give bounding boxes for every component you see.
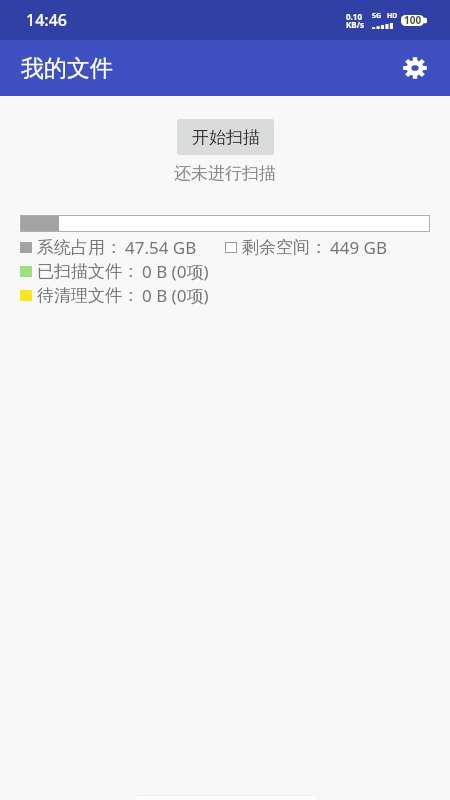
staticText: KB/s [346,19,364,30]
staticText: 待清理文件： [37,285,139,306]
staticText: 47.54 GB [125,236,197,259]
staticText: 0 B (0项) [142,284,209,307]
staticText: 100 [404,13,422,27]
staticText: 0.10 [346,11,362,22]
staticText: HD [387,11,398,21]
staticText: 剩余空间： [242,237,327,258]
staticText: 449 GB [330,236,388,259]
staticText: 系统占用： [37,237,122,258]
staticText: 开始扫描 [192,127,260,148]
staticText: 已扫描文件： [37,261,139,282]
staticText: 还未进行扫描 [174,163,276,184]
staticText: 14:46 [26,9,67,31]
staticText: 5G [372,11,382,21]
button[interactable]: 开始扫描 [177,119,274,155]
button[interactable]: Settings [393,46,437,90]
staticText: 我的文件 [21,54,113,83]
staticText: 0 B (0项) [142,260,209,283]
